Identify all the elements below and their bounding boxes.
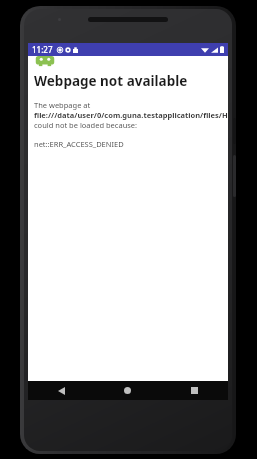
staticText: could not be loaded because: — [34, 120, 138, 130]
staticText: file:///data/user/0/com.guna.testapplica… — [34, 110, 228, 120]
button[interactable]: Recents — [161, 381, 228, 400]
staticText: 11:27 — [32, 44, 53, 55]
staticText: Webpage not available — [34, 72, 188, 90]
staticText: net::ERR_ACCESS_DENIED — [34, 139, 124, 149]
staticText: The webpage at — [34, 100, 91, 110]
button[interactable]: Home — [94, 381, 161, 400]
button[interactable]: Back — [28, 381, 94, 400]
